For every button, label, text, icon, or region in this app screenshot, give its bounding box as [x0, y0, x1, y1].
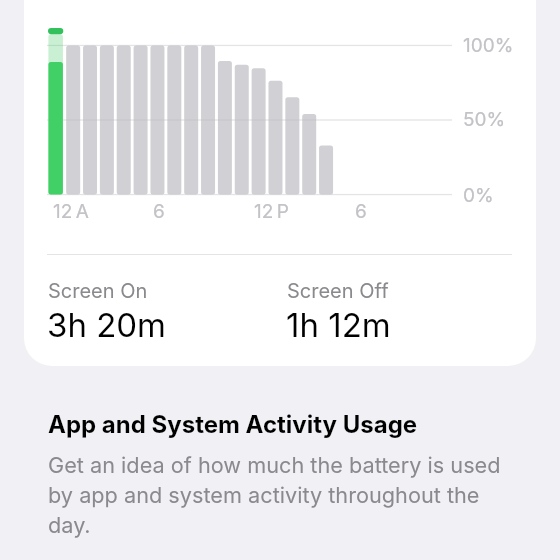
staticText: 1h 12m: [286, 305, 391, 345]
staticText: 3h 20m: [47, 305, 167, 345]
staticText: 100%: [463, 34, 514, 57]
staticText: Screen Off: [287, 279, 389, 303]
staticText: App and System Activity Usage: [48, 410, 418, 439]
staticText: 12 P: [254, 200, 289, 223]
staticText: 0%: [463, 184, 494, 207]
staticText: 6: [355, 200, 367, 223]
button[interactable]: Battery level chart card: [24, 0, 536, 366]
staticText: 6: [153, 200, 165, 223]
staticText: Screen On: [48, 279, 148, 303]
staticText: 12 A: [53, 200, 89, 223]
staticText: Get an idea of how much the battery is u…: [48, 452, 514, 538]
button[interactable]: App and System Activity Usage: [48, 410, 418, 439]
staticText: 50%: [463, 108, 506, 131]
